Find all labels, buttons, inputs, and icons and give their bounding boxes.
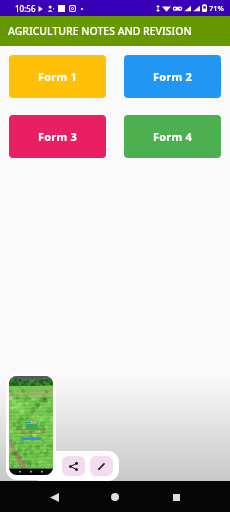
staticText: Form 4 (153, 129, 192, 144)
button[interactable]: Form 1 (9, 55, 106, 98)
button[interactable]: Back (42, 485, 66, 509)
button[interactable]: Form 2 (124, 55, 221, 98)
staticText: 71% (209, 3, 224, 13)
button[interactable]: Recents (164, 485, 188, 509)
button[interactable]: Share (62, 456, 85, 476)
staticText: AGRICULTURE NOTES AND REVISION (8, 24, 192, 38)
staticText: 10:56 (15, 3, 36, 14)
button[interactable]: Home (103, 485, 127, 509)
button[interactable]: Edit (90, 456, 113, 476)
staticText: Form 3 (38, 129, 77, 144)
button[interactable]: Form 4 (124, 115, 221, 158)
button[interactable] (6, 374, 56, 480)
button[interactable]: Form 3 (9, 115, 106, 158)
staticText: Form 1 (38, 69, 77, 84)
staticText: Form 2 (153, 69, 192, 84)
